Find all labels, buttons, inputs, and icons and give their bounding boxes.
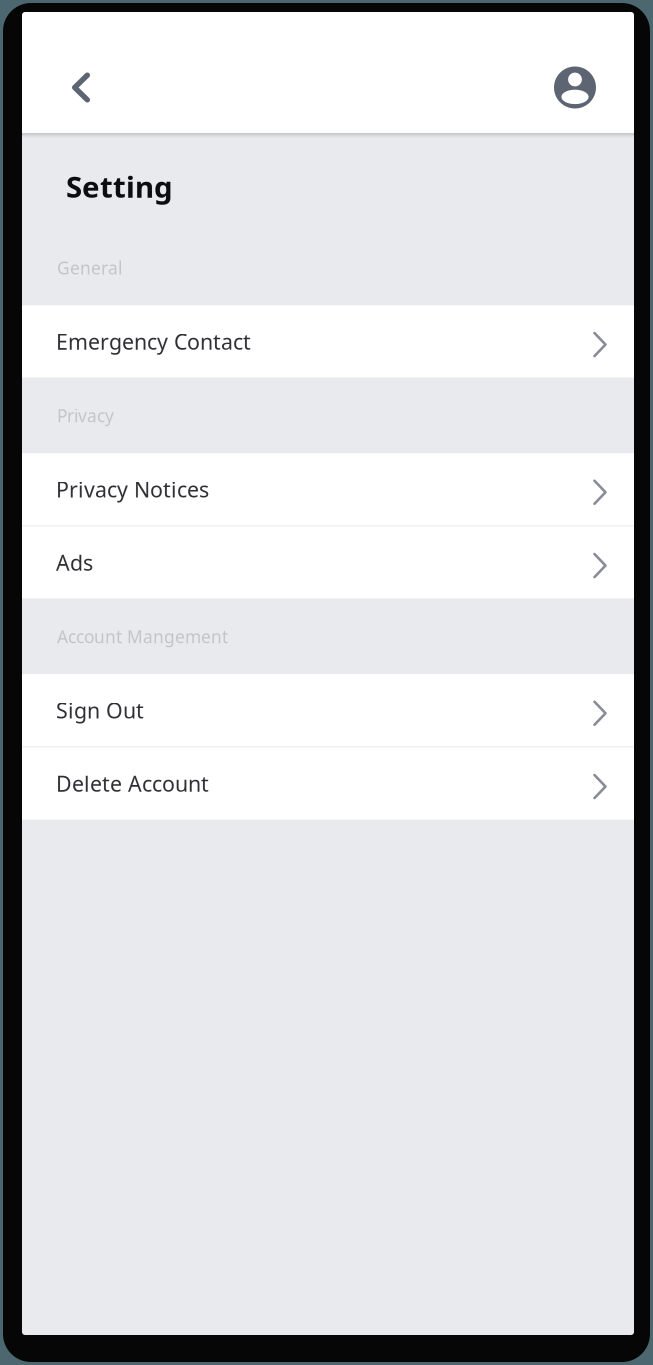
staticText: Delete Account	[56, 769, 209, 798]
staticText: Privacy	[57, 404, 114, 427]
button[interactable]: Ads	[22, 526, 634, 599]
button[interactable]: Account	[547, 59, 603, 115]
staticText: Setting	[66, 167, 173, 206]
staticText: Emergency Contact	[56, 327, 251, 356]
button[interactable]: Privacy Notices	[22, 453, 634, 525]
button[interactable]: Sign Out	[22, 674, 634, 746]
button[interactable]: Emergency Contact	[22, 305, 634, 378]
staticText: General	[57, 256, 122, 279]
staticText: Ads	[56, 548, 93, 577]
staticText: Sign Out	[56, 696, 144, 724]
staticText: Privacy Notices	[56, 475, 209, 503]
button[interactable]: Back	[50, 56, 112, 118]
staticText: Account Mangement	[57, 625, 228, 648]
button[interactable]: Delete Account	[22, 747, 634, 820]
